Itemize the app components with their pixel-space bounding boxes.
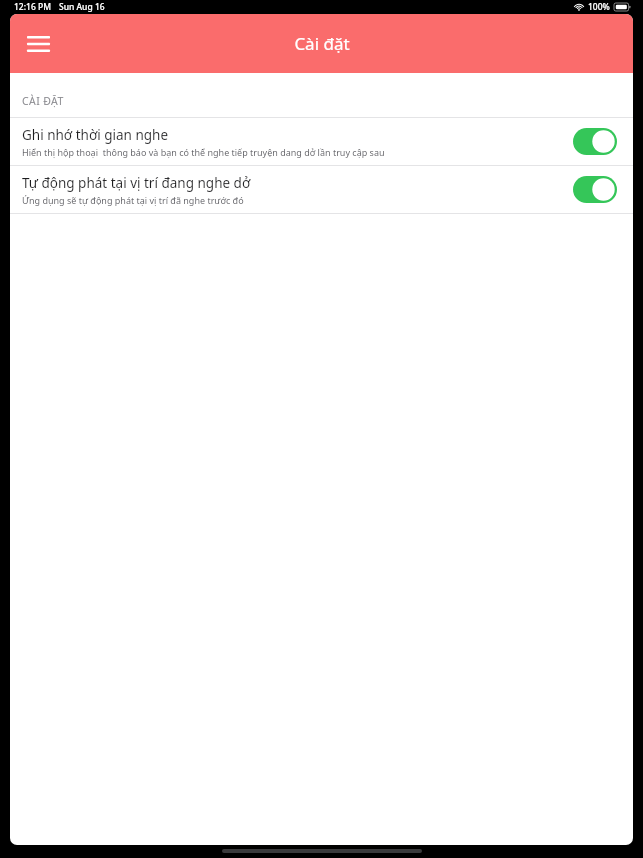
button[interactable]: Open navigation menu bbox=[18, 24, 58, 64]
staticText: 100% bbox=[588, 1, 610, 13]
staticText: 12:16 PM bbox=[14, 1, 51, 13]
staticText: Cài đặt bbox=[294, 32, 350, 55]
button[interactable]: Tự động phát tại vị trí đang nghe dở bbox=[10, 166, 633, 213]
staticText: Ghi nhớ thời gian nghe bbox=[22, 126, 169, 144]
button[interactable]: Toggle setting, on bbox=[573, 176, 617, 203]
staticText: Ứng dụng sẽ tự động phát tại vị trí đã n… bbox=[22, 194, 244, 206]
staticText: Tự động phát tại vị trí đang nghe dở bbox=[22, 174, 251, 192]
staticText: CÀI ĐẶT bbox=[22, 94, 64, 108]
staticText: Hiển thị hộp thoại thông báo và bạn có t… bbox=[22, 146, 385, 158]
button[interactable]: Ghi nhớ thời gian nghe bbox=[10, 118, 633, 165]
staticText: Sun Aug 16 bbox=[59, 1, 105, 13]
button[interactable]: Toggle setting, on bbox=[573, 128, 617, 155]
